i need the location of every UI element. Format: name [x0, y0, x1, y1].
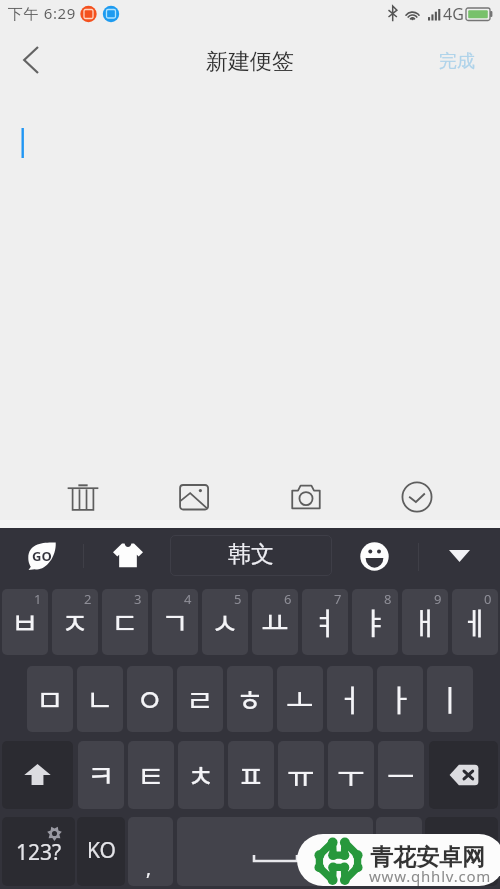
- button[interactable]: ㄹ: [177, 666, 223, 732]
- button[interactable]: 7: [302, 589, 348, 655]
- button[interactable]: ㅡ: [378, 741, 424, 809]
- button[interactable]: Enter: [425, 817, 498, 886]
- staticText: ,: [146, 855, 152, 881]
- button[interactable]: Emoji: [346, 531, 402, 581]
- staticText: 2: [84, 590, 92, 608]
- staticText: ㅐ: [411, 599, 439, 642]
- staticText: 0: [484, 590, 492, 608]
- button[interactable]: Space: [177, 817, 373, 886]
- button[interactable]: ㅏ: [377, 666, 423, 732]
- button[interactable]: ㅗ: [277, 666, 323, 732]
- staticText: ㅎ: [236, 676, 264, 719]
- staticText: www.qhhlv.com: [369, 866, 492, 886]
- button[interactable]: Insert image: [168, 471, 220, 523]
- staticText: ㅓ: [336, 676, 364, 719]
- staticText: 7: [334, 590, 342, 608]
- button[interactable]: 韩文: [170, 535, 332, 576]
- staticText: 8: [384, 590, 392, 608]
- button[interactable]: ㅜ: [328, 741, 374, 809]
- button[interactable]: GO Keyboard menu: [12, 531, 71, 581]
- button[interactable]: Confirm: [391, 471, 443, 523]
- button[interactable]: 9: [402, 589, 448, 655]
- staticText: ㅔ: [461, 599, 489, 642]
- staticText: .: [394, 853, 400, 879]
- button[interactable]: 3: [102, 589, 148, 655]
- staticText: ㅏ: [386, 676, 414, 719]
- button[interactable]: 8: [352, 589, 398, 655]
- staticText: ㅠ: [287, 752, 315, 795]
- staticText: ㅂ: [11, 599, 39, 642]
- staticText: ㅜ: [337, 752, 365, 795]
- button[interactable]: 5: [202, 589, 248, 655]
- staticText: 123?: [16, 838, 62, 867]
- button[interactable]: 4: [152, 589, 198, 655]
- staticText: GO: [32, 547, 52, 565]
- button[interactable]: .: [376, 817, 422, 886]
- button[interactable]: ㅋ: [78, 741, 124, 809]
- button[interactable]: 123?: [2, 817, 75, 886]
- staticText: 完成: [439, 50, 475, 73]
- button[interactable]: Delete: [57, 471, 109, 523]
- button[interactable]: 6: [252, 589, 298, 655]
- staticText: ㅍ: [237, 752, 265, 795]
- staticText: 9: [434, 590, 442, 608]
- staticText: 韩文: [228, 540, 274, 569]
- button[interactable]: ㅣ: [427, 666, 473, 732]
- staticText: ㅁ: [36, 676, 64, 719]
- staticText: ㅑ: [361, 599, 389, 642]
- button[interactable]: Back: [4, 36, 56, 84]
- staticText: ㅗ: [286, 676, 314, 719]
- button[interactable]: Theme: [100, 531, 156, 581]
- staticText: 青花安卓网: [370, 843, 485, 872]
- staticText: ㅊ: [187, 752, 215, 795]
- button[interactable]: ㅍ: [228, 741, 274, 809]
- staticText: 新建便签: [0, 48, 500, 76]
- staticText: KO: [87, 836, 116, 865]
- button[interactable]: ㅎ: [227, 666, 273, 732]
- staticText: 3: [134, 590, 142, 608]
- staticText: ㄹ: [186, 676, 214, 719]
- staticText: 5: [234, 590, 242, 608]
- staticText: ㅣ: [436, 676, 464, 719]
- button[interactable]: Take photo: [280, 471, 332, 523]
- button[interactable]: Hide keyboard: [431, 531, 487, 581]
- staticText: ㅅ: [211, 599, 239, 642]
- button[interactable]: ㅌ: [128, 741, 174, 809]
- staticText: ㅋ: [87, 752, 115, 795]
- button[interactable]: Shift: [2, 741, 73, 809]
- button[interactable]: ㅁ: [27, 666, 73, 732]
- staticText: 4G: [443, 3, 464, 25]
- staticText: ㅡ: [387, 752, 415, 795]
- button[interactable]: 完成: [439, 50, 475, 73]
- staticText: ㅕ: [311, 599, 339, 642]
- staticText: ㄱ: [161, 599, 189, 642]
- staticText: ㅛ: [261, 599, 289, 642]
- button[interactable]: ㅠ: [278, 741, 324, 809]
- button[interactable]: ㅓ: [327, 666, 373, 732]
- button[interactable]: Backspace: [429, 741, 498, 809]
- button[interactable]: 2: [52, 589, 98, 655]
- staticText: 4: [184, 590, 192, 608]
- staticText: 下午 6:29: [8, 3, 76, 23]
- button[interactable]: ,: [128, 817, 173, 886]
- staticText: 6: [284, 590, 292, 608]
- button[interactable]: ㄴ: [77, 666, 123, 732]
- button[interactable]: ㅇ: [127, 666, 173, 732]
- button[interactable]: ㅊ: [178, 741, 224, 809]
- button[interactable]: 0: [452, 589, 498, 655]
- staticText: ㄴ: [86, 676, 114, 719]
- button[interactable]: KO: [77, 817, 125, 886]
- button[interactable]: 1: [2, 589, 48, 655]
- staticText: ㅇ: [136, 676, 164, 719]
- staticText: ㅌ: [137, 752, 165, 795]
- staticText: ㄷ: [111, 599, 139, 642]
- staticText: 1: [34, 590, 42, 608]
- staticText: ㅈ: [61, 599, 89, 642]
